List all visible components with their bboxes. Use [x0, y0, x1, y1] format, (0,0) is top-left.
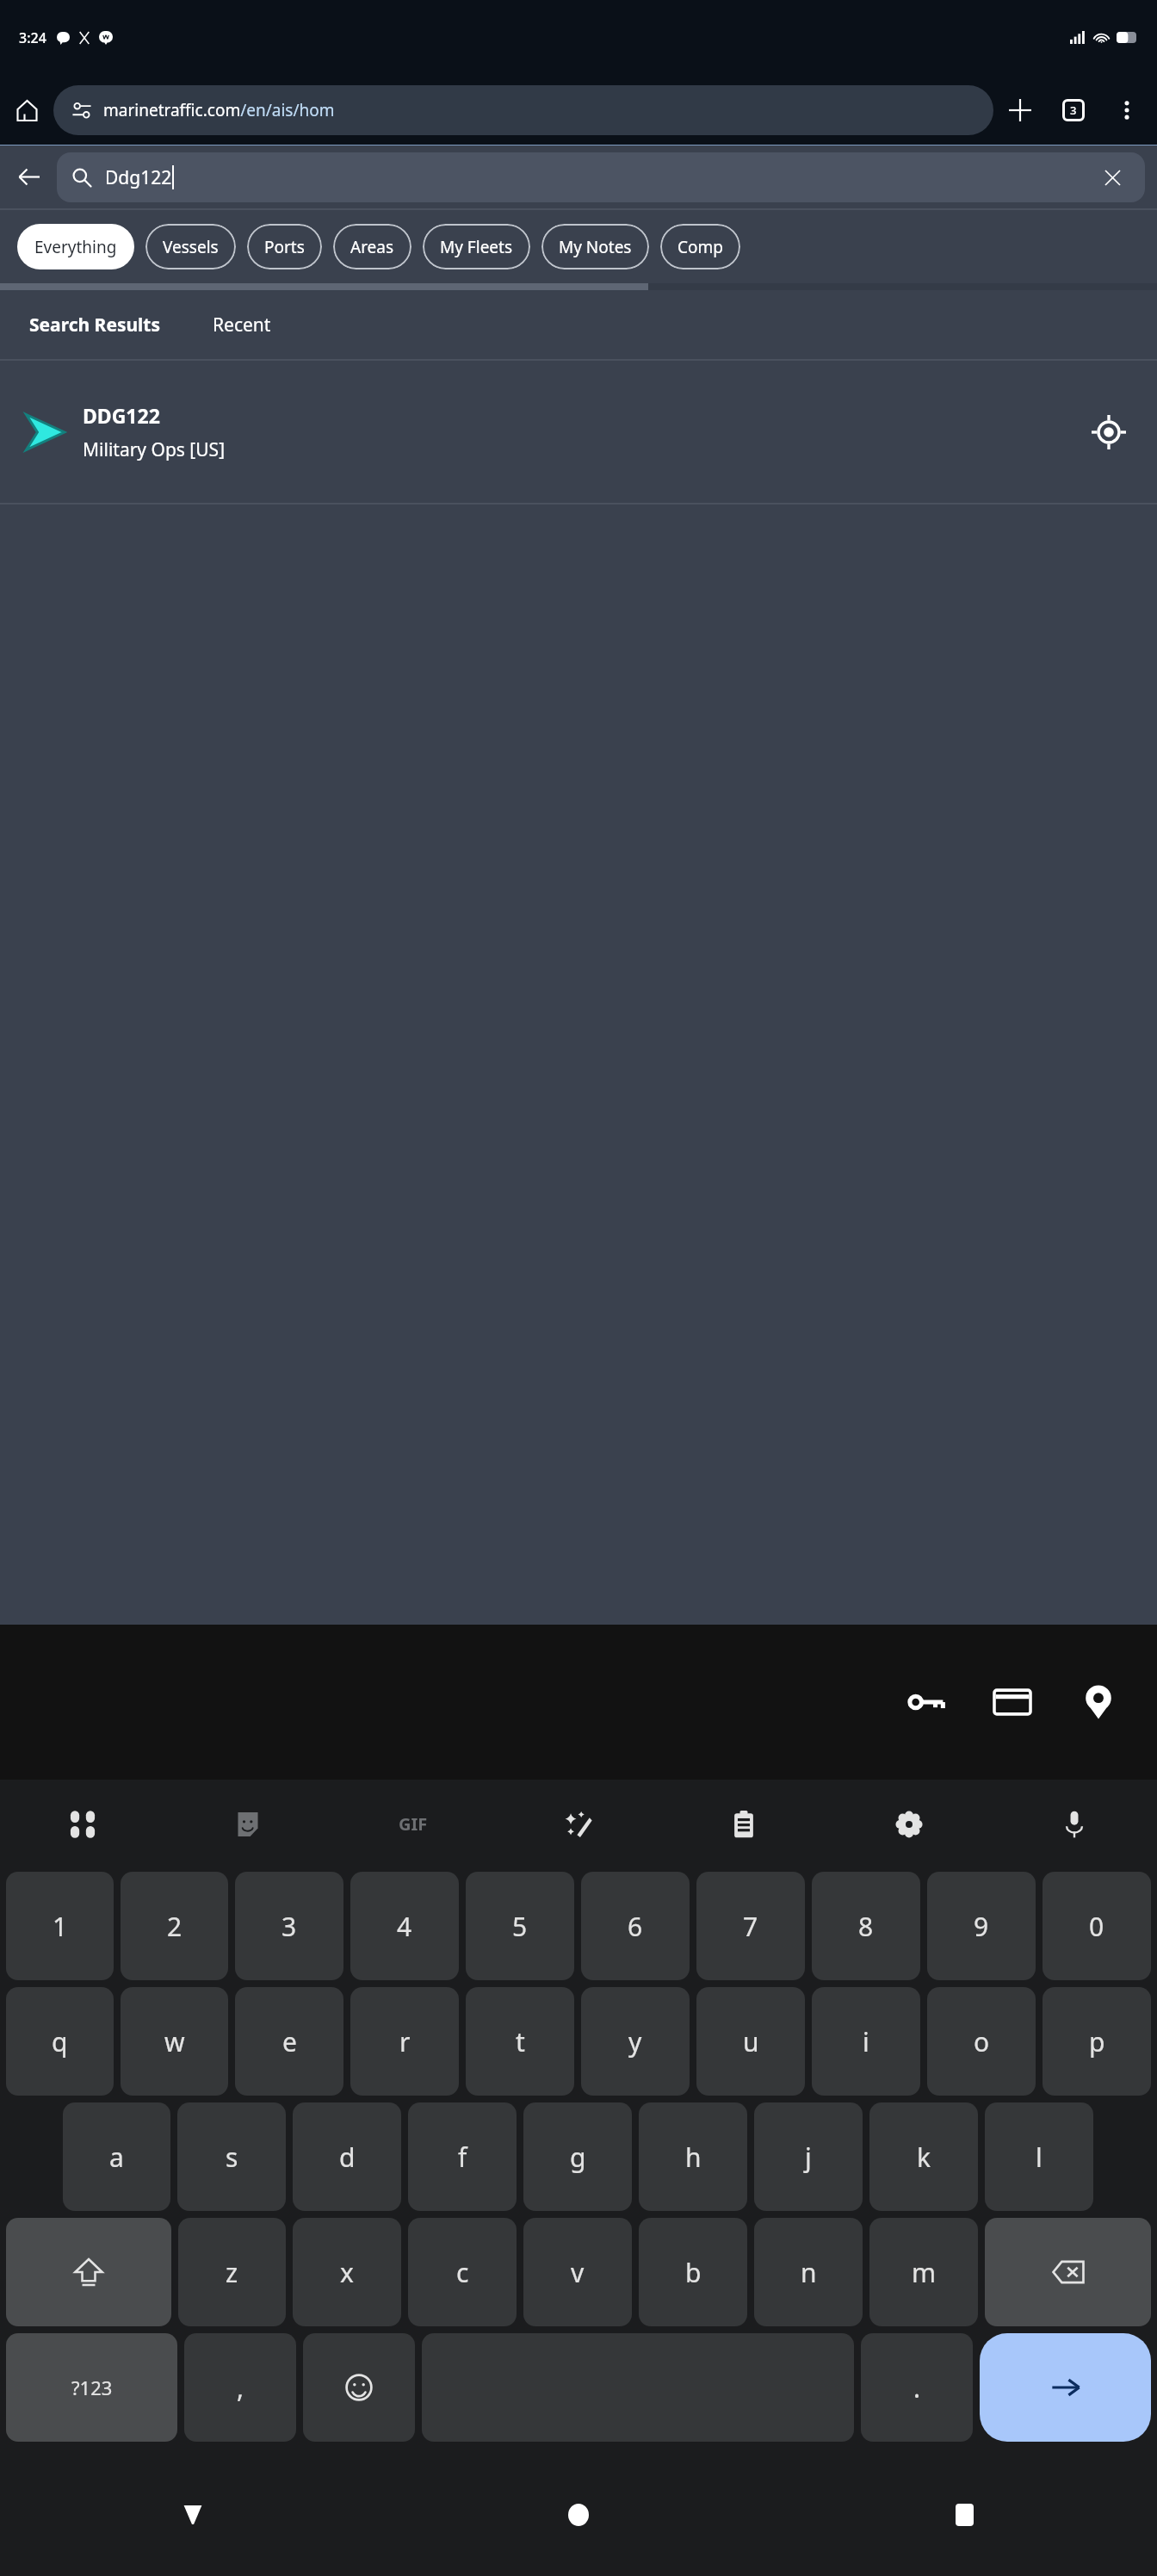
staticText: b — [685, 2255, 702, 2290]
button[interactable]: Back — [0, 2454, 386, 2576]
button[interactable]: Vessels — [145, 224, 236, 269]
button[interactable]: e — [235, 1987, 343, 2096]
button[interactable]: Stickers — [165, 1780, 331, 1868]
button[interactable]: j — [754, 2102, 863, 2211]
button[interactable]: f — [408, 2102, 517, 2211]
button[interactable]: s — [177, 2102, 286, 2211]
button[interactable]: d — [293, 2102, 401, 2211]
button[interactable]: z — [178, 2218, 286, 2326]
staticText: My Fleets — [440, 236, 513, 258]
button[interactable]: Backspace — [985, 2218, 1151, 2326]
staticText: 4 — [397, 1909, 412, 1944]
button[interactable]: 1 — [6, 1872, 114, 1980]
button[interactable]: GIF — [331, 1780, 496, 1868]
button[interactable]: r — [350, 1987, 459, 2096]
button[interactable]: n — [754, 2218, 863, 2326]
button[interactable]: o — [927, 1987, 1036, 2096]
button[interactable]: ?123 — [6, 2333, 177, 2442]
button[interactable]: x — [293, 2218, 401, 2326]
staticText: 2 — [167, 1909, 183, 1944]
button[interactable]: Clear search — [1095, 160, 1129, 195]
staticText: f — [458, 2139, 467, 2175]
button[interactable]: Emoji — [303, 2333, 415, 2442]
button[interactable]: Addresses — [1055, 1659, 1142, 1745]
staticText: 8 — [858, 1909, 874, 1944]
staticText: Military Ops [US] — [83, 437, 226, 462]
button[interactable]: w — [121, 1987, 228, 2096]
button[interactable]: Everything — [17, 224, 134, 269]
staticText: p — [1089, 2024, 1105, 2059]
button[interactable]: u — [696, 1987, 805, 2096]
button[interactable]: Search — [980, 2333, 1151, 2442]
button[interactable]: g — [523, 2102, 632, 2211]
button[interactable]: Tabs, 3 open — [1047, 84, 1100, 137]
button[interactable]: . — [861, 2333, 973, 2442]
button[interactable]: a — [63, 2102, 170, 2211]
button[interactable]: Voice input — [992, 1780, 1157, 1868]
button[interactable]: 4 — [350, 1872, 459, 1980]
staticText: Comp — [677, 236, 723, 258]
button[interactable]: y — [581, 1987, 690, 2096]
button[interactable]: Passwords — [883, 1659, 969, 1745]
staticText: u — [743, 2024, 759, 2059]
button[interactable]: Ports — [247, 224, 322, 269]
button[interactable]: Settings — [826, 1780, 992, 1868]
button[interactable]: New tab — [993, 84, 1047, 137]
staticText: Recent — [213, 313, 271, 337]
button[interactable]: Open features — [0, 1780, 165, 1868]
button[interactable]: My Fleets — [423, 224, 530, 269]
button[interactable]: Home — [386, 2454, 771, 2576]
button[interactable]: 0 — [1043, 1872, 1151, 1980]
button[interactable]: q — [6, 1987, 114, 2096]
button[interactable]: 3 — [235, 1872, 343, 1980]
staticText: d — [339, 2139, 356, 2175]
button[interactable]: More options — [1100, 84, 1154, 137]
button[interactable]: 6 — [581, 1872, 690, 1980]
button[interactable]: p — [1043, 1987, 1151, 2096]
button[interactable]: Write — [496, 1780, 661, 1868]
button[interactable]: Payment methods — [969, 1659, 1055, 1745]
button[interactable]: b — [639, 2218, 747, 2326]
button[interactable]: 8 — [812, 1872, 920, 1980]
staticText: t — [516, 2024, 525, 2059]
staticText: Everything — [34, 236, 117, 258]
button[interactable]: Clipboard — [661, 1780, 826, 1868]
button[interactable]: DDG122 — [0, 361, 1157, 503]
button[interactable]: My Notes — [541, 224, 649, 269]
staticText: My Notes — [559, 236, 632, 258]
button[interactable]: Ddg122 — [57, 152, 1145, 202]
button[interactable]: l — [985, 2102, 1093, 2211]
button[interactable]: 7 — [696, 1872, 805, 1980]
button[interactable]: , — [184, 2333, 296, 2442]
staticText: m — [912, 2255, 937, 2290]
button[interactable]: Shift — [6, 2218, 171, 2326]
button[interactable]: i — [812, 1987, 920, 2096]
button[interactable]: h — [639, 2102, 747, 2211]
button[interactable]: 9 — [927, 1872, 1036, 1980]
button[interactable]: Search Results — [26, 306, 164, 344]
button[interactable]: Recent — [209, 306, 275, 344]
button[interactable]: 2 — [121, 1872, 228, 1980]
staticText: ?123 — [71, 2375, 113, 2400]
button[interactable]: Comp — [660, 224, 740, 269]
staticText: Vessels — [163, 236, 219, 258]
button[interactable]: c — [408, 2218, 517, 2326]
button[interactable]: marinetraffic.com/en/ais/hom — [53, 85, 993, 135]
staticText: a — [109, 2139, 124, 2175]
button[interactable]: Areas — [333, 224, 411, 269]
button[interactable]: k — [869, 2102, 978, 2211]
staticText: l — [1036, 2139, 1043, 2175]
button[interactable]: Back — [0, 146, 57, 208]
staticText: DDG122 — [83, 402, 160, 429]
button[interactable]: Recent apps — [771, 2454, 1157, 2576]
button[interactable]: Home — [0, 84, 53, 137]
staticText: . — [913, 2370, 921, 2406]
button[interactable]: 5 — [466, 1872, 574, 1980]
button[interactable]: t — [466, 1987, 574, 2096]
button[interactable]: Locate on map — [1081, 405, 1136, 460]
staticText: z — [226, 2255, 238, 2290]
button[interactable]: m — [869, 2218, 978, 2326]
button[interactable]: v — [523, 2218, 632, 2326]
staticText: 5 — [512, 1909, 528, 1944]
